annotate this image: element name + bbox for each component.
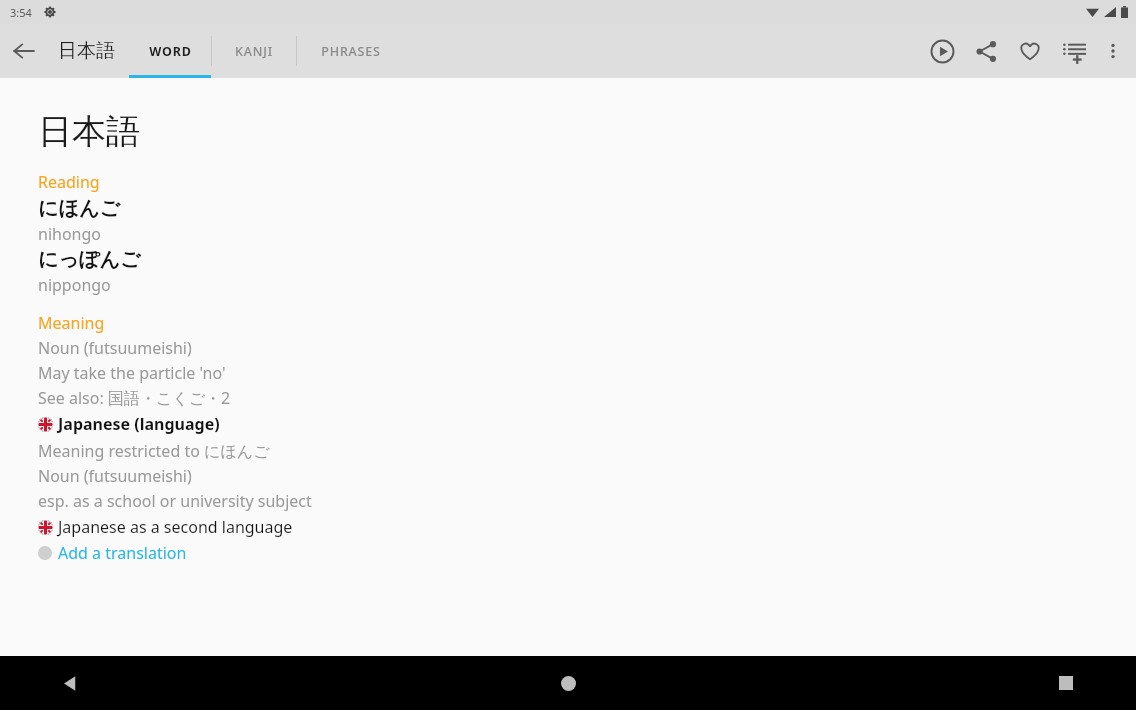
button[interactable]: Back [0,27,48,75]
staticText: Japanese as a second language [58,516,293,538]
staticText: Japanese (language) [58,413,220,435]
button[interactable]: WORD [129,24,211,78]
staticText: Meaning restricted to にほんご [38,440,270,462]
staticText: Noun (futsuumeishi) [38,337,192,359]
staticText: May take the particle 'no' [38,362,226,384]
button[interactable]: PHRASES [297,24,405,78]
button[interactable]: Add a translation [38,542,201,564]
staticText: にほんご [38,196,120,221]
staticText: 日本語 [38,110,140,153]
staticText: Meaning [38,312,105,334]
button[interactable]: Add to list [1052,24,1096,78]
staticText: nihongo [38,223,101,245]
staticText: KANJI [235,43,273,60]
button[interactable]: Recent apps [996,656,1136,710]
button[interactable]: Play [920,24,964,78]
staticText: にっぽんご [38,247,141,272]
button[interactable]: Share [964,24,1008,78]
staticText: PHRASES [321,43,381,60]
staticText: Add a translation [58,542,187,564]
staticText: esp. as a school or university subject [38,490,312,512]
staticText: Reading [38,171,100,193]
button[interactable]: Back [0,656,140,710]
staticText: nippongo [38,274,111,296]
button[interactable]: KANJI [212,24,296,78]
staticText: WORD [149,43,192,60]
staticText: Noun (futsuumeishi) [38,465,192,487]
button[interactable]: Home [508,656,628,710]
staticText: See also: 国語・こくご・2 [38,387,231,409]
staticText: 3:54 [10,5,32,20]
button[interactable]: More options [1096,24,1130,78]
button[interactable]: Favorite [1008,24,1052,78]
staticText: 日本語 [58,39,115,63]
